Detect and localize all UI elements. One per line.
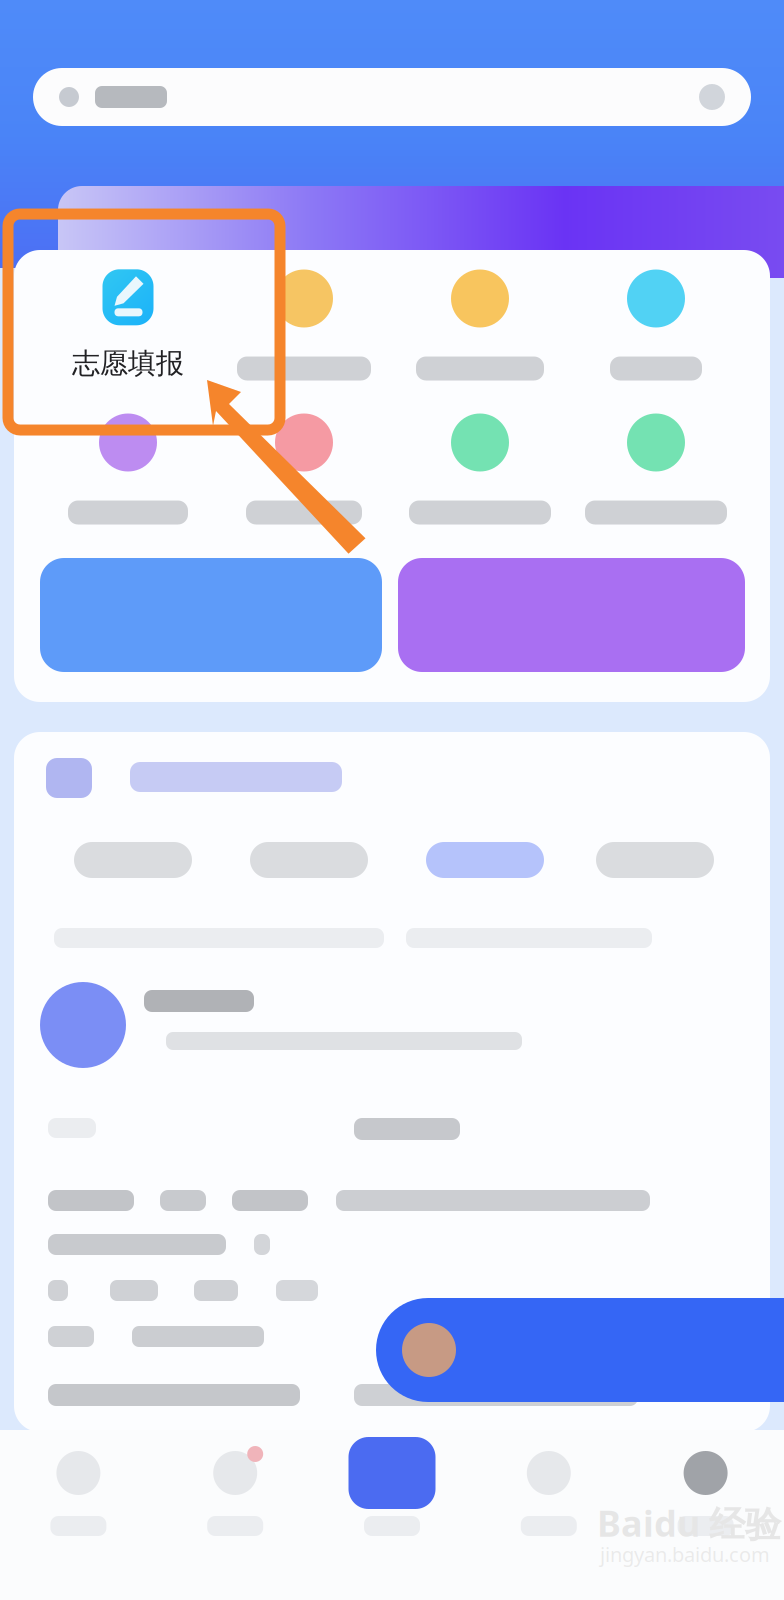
button[interactable]: Feature [392,413,568,525]
staticText: Baidu 经验 [597,1499,781,1547]
button[interactable]: Feature [568,413,744,525]
button[interactable]: Banner one [40,558,382,672]
button[interactable]: Tab [0,1430,157,1600]
button[interactable]: Tab [627,1430,784,1600]
button[interactable]: Feature [40,413,216,525]
button[interactable]: Banner two [398,558,745,672]
button[interactable]: Feature [216,269,392,381]
button[interactable]: Promotion [376,1298,784,1402]
button[interactable]: Filter [596,842,714,878]
button[interactable]: Feature [216,413,392,525]
button[interactable]: 志愿填报 [40,269,216,381]
button[interactable]: Filter [74,842,192,878]
button[interactable]: Tab [157,1430,314,1600]
button[interactable]: Filter [426,842,544,878]
button[interactable]: Feature [568,269,744,381]
button[interactable]: Tab [314,1430,470,1600]
button[interactable]: Feature [392,269,568,381]
button[interactable]: Search [33,68,751,126]
staticText: jingyan.baidu.com [600,1541,770,1568]
button[interactable]: Tab [470,1430,627,1600]
staticText: 志愿填报 [72,346,184,381]
button[interactable]: Filter [250,842,368,878]
